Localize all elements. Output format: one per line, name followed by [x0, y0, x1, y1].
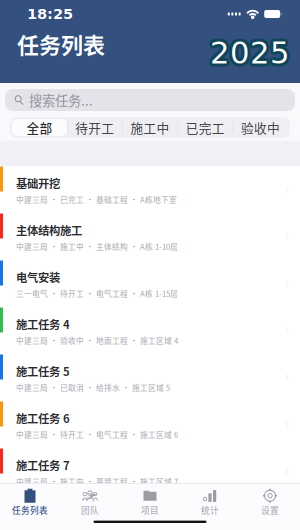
- staticText: 中建三局 · 已完工 · 基础工程 · A栋地下室: [16, 194, 177, 205]
- button[interactable]: 任务列表: [0, 487, 60, 517]
- staticText: 三一电气 · 待开工 · 电气工程 · A栋 1-15层: [16, 288, 178, 299]
- staticText: 2025: [212, 33, 292, 68]
- staticText: 任务列表: [12, 504, 48, 516]
- staticText: 团队: [81, 504, 99, 516]
- staticText: 2025: [213, 35, 293, 71]
- staticText: 验收中: [241, 118, 280, 137]
- button[interactable]: 验收中: [233, 119, 288, 136]
- staticText: 基础开挖: [16, 175, 60, 191]
- staticText: 2025: [208, 33, 288, 68]
- button[interactable]: 基础开挖: [0, 166, 300, 213]
- staticText: 施工任务 4: [16, 316, 70, 332]
- button[interactable]: 施工中: [122, 119, 178, 136]
- staticText: 主体结构施工: [16, 222, 82, 238]
- button[interactable]: 设置: [240, 487, 300, 517]
- staticText: 2025: [212, 37, 292, 73]
- button[interactable]: 施工任务 4: [0, 307, 300, 354]
- staticText: 2025: [208, 37, 288, 73]
- staticText: 搜索任务...: [29, 90, 93, 110]
- staticText: 2025: [210, 35, 290, 71]
- staticText: 任务列表: [17, 28, 105, 60]
- button[interactable]: 已完工: [178, 119, 233, 136]
- staticText: 施工任务 5: [16, 363, 70, 379]
- button[interactable]: 主体结构施工: [0, 213, 300, 260]
- button[interactable]: 施工任务 5: [0, 354, 300, 401]
- button[interactable]: 项目: [120, 487, 180, 517]
- staticText: 中建三局 · 施工中 · 幕墙工程 · 施工区域 7: [16, 476, 178, 487]
- button[interactable]: 团队: [60, 487, 120, 517]
- staticText: 全部: [27, 118, 53, 137]
- staticText: 中建三局 · 待开工 · 电气工程 · 施工区域 6: [16, 429, 178, 440]
- staticText: 施工任务 6: [16, 410, 70, 426]
- button[interactable]: 施工任务 7: [0, 448, 300, 495]
- staticText: 待开工: [75, 118, 114, 137]
- staticText: 18:25: [27, 5, 73, 23]
- button[interactable]: 统计: [180, 487, 240, 517]
- staticText: 施工任务 7: [16, 457, 70, 473]
- button[interactable]: 待开工: [67, 119, 122, 136]
- staticText: 已完工: [186, 118, 225, 137]
- staticText: 中建三局 · 验收中 · 地面工程 · 施工区域 4: [16, 335, 178, 346]
- staticText: 中建三局 · 已取消 · 给排水 · 施工区域 5: [16, 382, 170, 393]
- staticText: 2025: [207, 35, 287, 71]
- staticText: 项目: [141, 504, 159, 516]
- staticText: 电气安装: [16, 269, 60, 285]
- staticText: 中建三局 · 施工中 · 主体结构 · A栋 1-10层: [16, 241, 178, 252]
- staticText: 2025: [210, 38, 290, 74]
- staticText: 2025: [210, 32, 290, 68]
- staticText: 设置: [261, 504, 279, 516]
- button[interactable]: 施工任务 6: [0, 401, 300, 448]
- staticText: 统计: [201, 504, 219, 516]
- button[interactable]: 全部: [12, 119, 67, 136]
- button[interactable]: 电气安装: [0, 260, 300, 307]
- staticText: 施工中: [130, 118, 169, 137]
